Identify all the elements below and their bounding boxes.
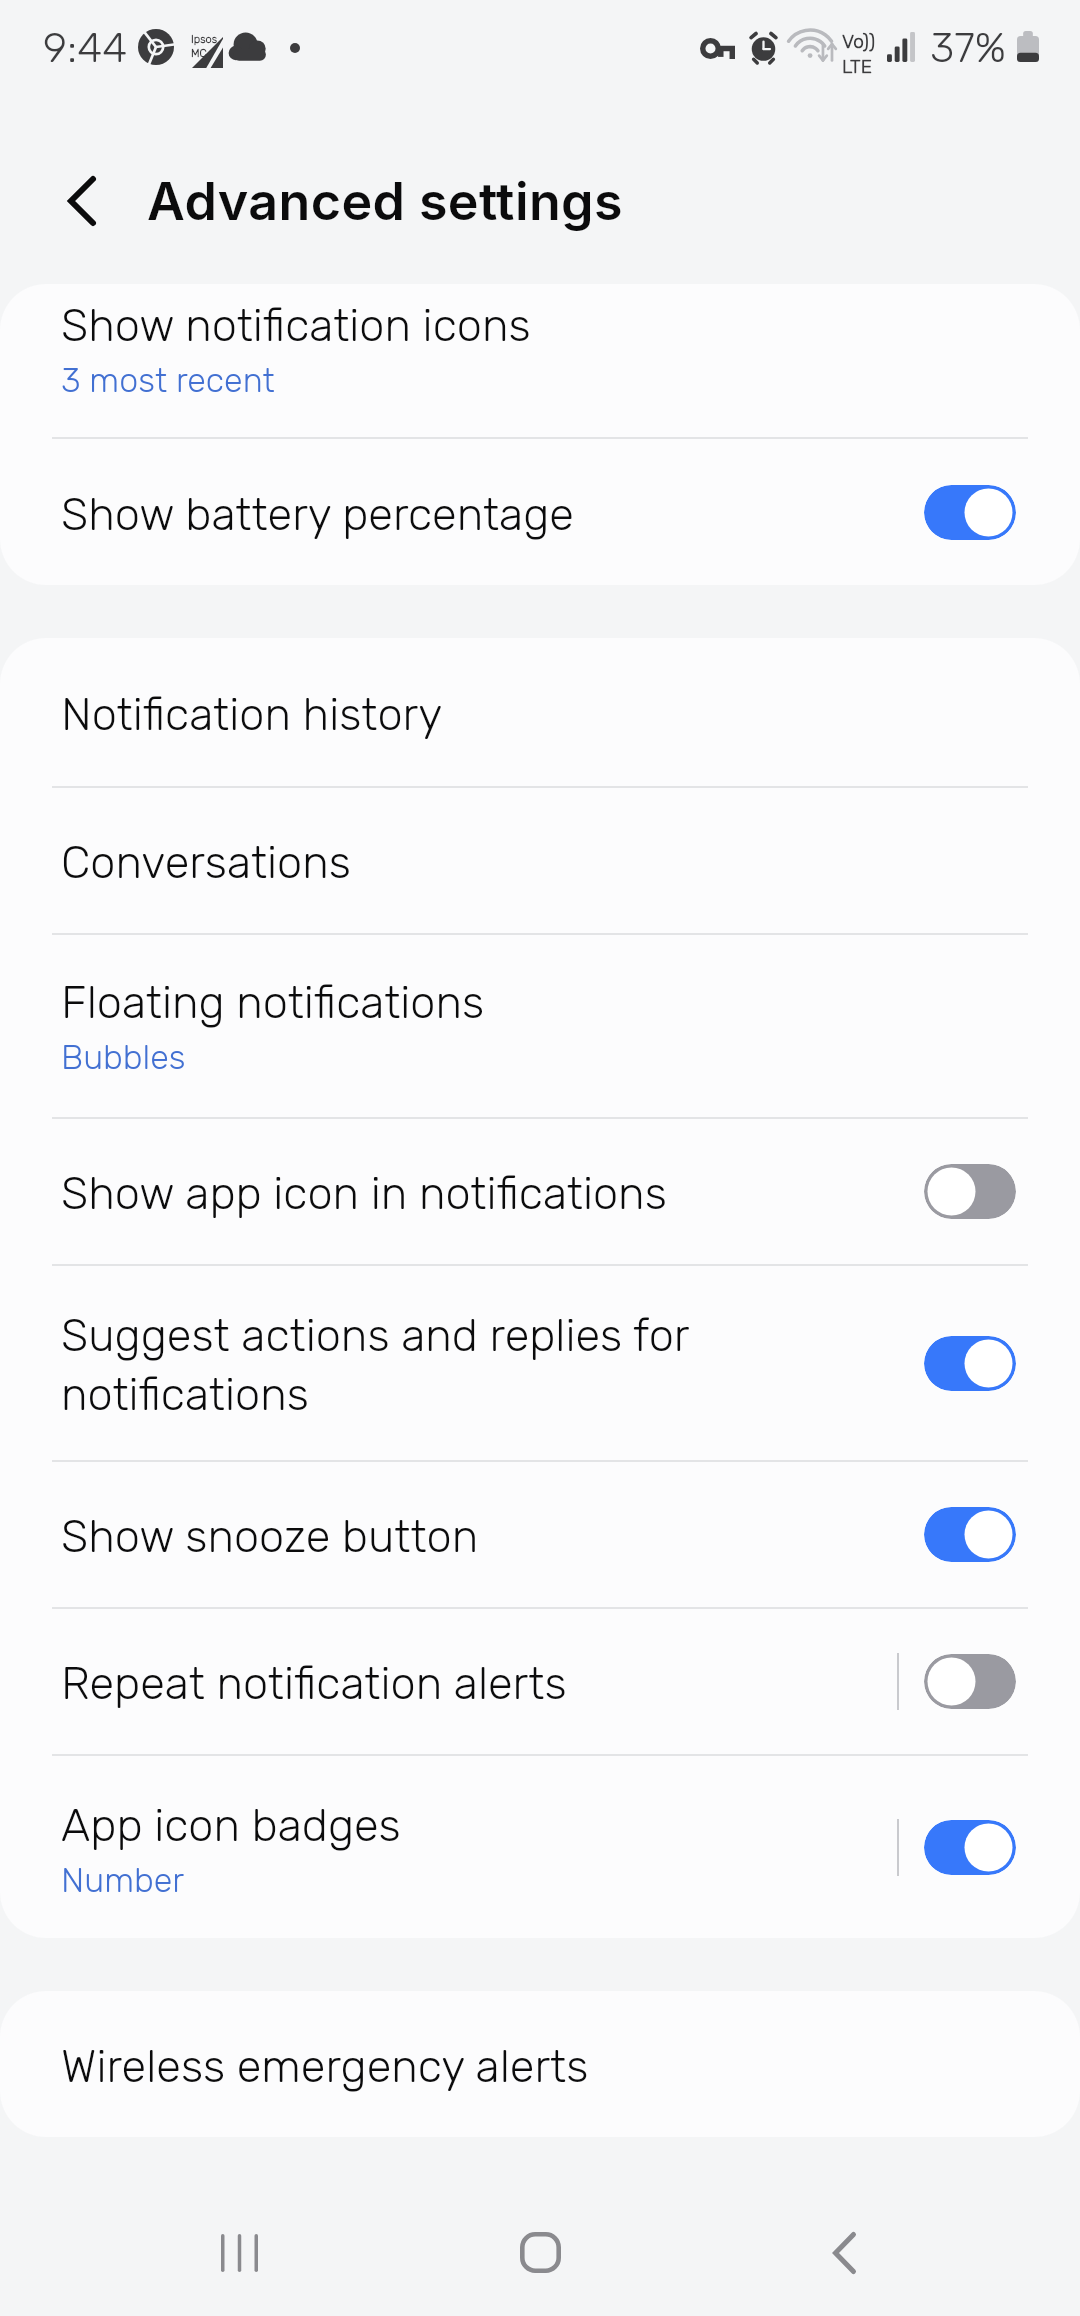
button[interactable]: On [924, 485, 1016, 540]
staticText: Advanced settings [147, 170, 623, 233]
staticText: Wireless emergency alerts [61, 2035, 589, 2094]
button[interactable]: Off [924, 1654, 1016, 1709]
button[interactable]: Show app icon in notifications [0, 1119, 1080, 1264]
staticText: App icon badges [61, 1794, 401, 1853]
button[interactable]: Off [924, 1164, 1016, 1219]
button[interactable]: App icon badges [0, 1756, 1080, 1938]
button[interactable]: Wireless emergency alerts [0, 1991, 1080, 2137]
staticText: Show snooze button [61, 1505, 479, 1564]
staticText: Conversations [61, 831, 351, 890]
button[interactable]: Floating notifications [0, 935, 1080, 1117]
staticText: Show battery percentage [61, 483, 574, 542]
button[interactable]: On [924, 1336, 1016, 1391]
staticText: Show notification icons [61, 294, 531, 353]
staticText: MC+ [191, 47, 214, 60]
button[interactable]: Navigate up [34, 153, 130, 249]
staticText: 3 most recent [61, 360, 275, 400]
button[interactable]: On [924, 1820, 1016, 1875]
button[interactable]: Home [460, 2189, 620, 2316]
button[interactable]: Recent apps [159, 2189, 319, 2316]
staticText: Notification history [61, 683, 443, 742]
button[interactable]: Conversations [0, 788, 1080, 933]
staticText: Repeat notification alerts [61, 1652, 567, 1711]
staticText: Show app icon in notifications [61, 1162, 667, 1221]
staticText: Suggest actions and replies for notifica… [61, 1304, 851, 1422]
button[interactable]: Repeat notification alerts [0, 1609, 1080, 1754]
button[interactable]: Suggest actions and replies for notifica… [0, 1266, 1080, 1460]
staticText: Vo)) [842, 30, 875, 53]
staticText: 9:44 [43, 23, 128, 73]
button[interactable]: Back [764, 2189, 924, 2316]
staticText: LTE [842, 55, 872, 78]
staticText: Bubbles [61, 1037, 186, 1077]
button[interactable]: Notification history [0, 638, 1080, 786]
button[interactable]: On [924, 1507, 1016, 1562]
staticText: Ipsos [191, 33, 218, 46]
button[interactable]: Show notification icons [0, 284, 1080, 437]
staticText: 37% [930, 23, 1006, 73]
button[interactable]: Show battery percentage [0, 439, 1080, 585]
staticText: Floating notifications [61, 971, 485, 1030]
staticText: Number [61, 1860, 185, 1900]
button[interactable]: Show snooze button [0, 1462, 1080, 1607]
